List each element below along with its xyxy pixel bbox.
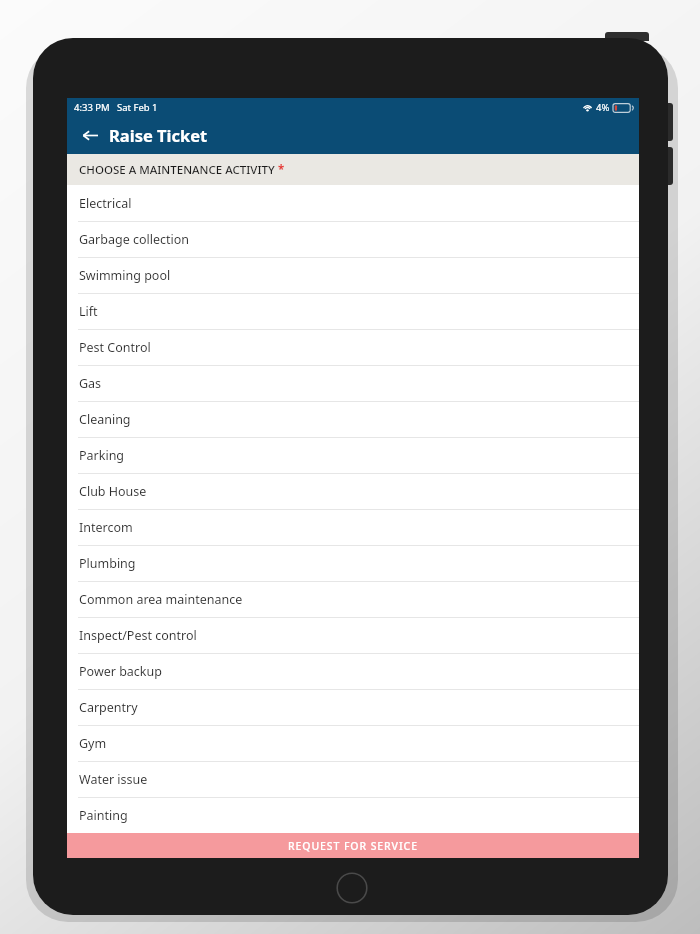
staticText: Pest Control bbox=[79, 339, 151, 356]
button[interactable]: Painting bbox=[67, 797, 639, 833]
staticText: Parking bbox=[79, 447, 125, 464]
button[interactable]: Gas bbox=[67, 365, 639, 401]
staticText: CHOOSE A MAINTENANCE ACTIVITY bbox=[79, 162, 275, 178]
button[interactable]: Gym bbox=[67, 725, 639, 761]
staticText: Plumbing bbox=[79, 555, 136, 572]
button[interactable]: Lift bbox=[67, 293, 639, 329]
staticText: Painting bbox=[79, 807, 128, 824]
button[interactable]: Inspect/Pest control bbox=[67, 617, 639, 653]
staticText: * bbox=[278, 162, 285, 178]
button[interactable]: Club House bbox=[67, 473, 639, 509]
button[interactable]: Plumbing bbox=[67, 545, 639, 581]
button[interactable]: Electrical bbox=[67, 185, 639, 221]
button[interactable]: Pest Control bbox=[67, 329, 639, 365]
staticText: 4:33 PM bbox=[74, 101, 110, 114]
staticText: REQUEST FOR SERVICE bbox=[288, 839, 418, 853]
staticText: Gym bbox=[79, 735, 107, 752]
button[interactable]: Parking bbox=[67, 437, 639, 473]
button[interactable]: Power backup bbox=[67, 653, 639, 689]
staticText: Raise Ticket bbox=[109, 124, 208, 146]
button[interactable]: Carpentry bbox=[67, 689, 639, 725]
staticText: Intercom bbox=[79, 519, 133, 536]
staticText: Gas bbox=[79, 375, 102, 392]
staticText: Common area maintenance bbox=[79, 591, 243, 608]
staticText: Inspect/Pest control bbox=[79, 627, 197, 644]
button[interactable]: Swimming pool bbox=[67, 257, 639, 293]
staticText: Water issue bbox=[79, 771, 148, 788]
staticText: Lift bbox=[79, 303, 98, 320]
staticText: Garbage collection bbox=[79, 231, 190, 248]
staticText: Carpentry bbox=[79, 699, 138, 716]
staticText: Electrical bbox=[79, 195, 132, 212]
button[interactable]: REQUEST FOR SERVICE bbox=[67, 833, 639, 858]
staticText: 4% bbox=[596, 101, 610, 114]
button[interactable]: Garbage collection bbox=[67, 221, 639, 257]
staticText: Power backup bbox=[79, 663, 162, 680]
staticText: Club House bbox=[79, 483, 147, 500]
staticText: Sat Feb 1 bbox=[117, 101, 158, 114]
button[interactable]: Intercom bbox=[67, 509, 639, 545]
button[interactable]: Back bbox=[77, 122, 103, 148]
button[interactable]: Water issue bbox=[67, 761, 639, 797]
button[interactable]: Cleaning bbox=[67, 401, 639, 437]
staticText: Cleaning bbox=[79, 411, 131, 428]
staticText: Swimming pool bbox=[79, 267, 171, 284]
button[interactable]: Common area maintenance bbox=[67, 581, 639, 617]
